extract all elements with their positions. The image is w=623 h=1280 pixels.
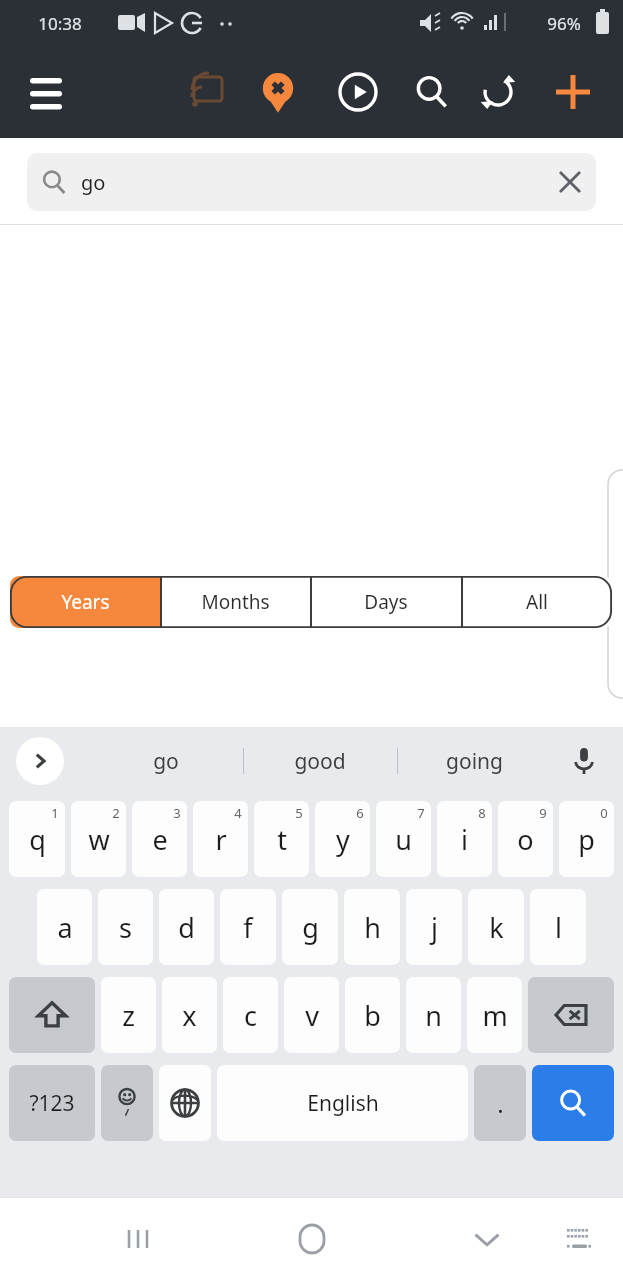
button[interactable]: y xyxy=(315,801,370,877)
button[interactable]: Refresh xyxy=(468,62,528,122)
staticText: good xyxy=(294,747,346,776)
button[interactable]: Keyboard settings xyxy=(551,1211,607,1267)
staticText: go xyxy=(81,169,106,196)
button[interactable]: good xyxy=(243,727,397,795)
staticText: f xyxy=(243,909,253,946)
button[interactable]: going xyxy=(397,727,551,795)
staticText: y xyxy=(336,821,350,858)
button[interactable]: p xyxy=(559,801,614,877)
button[interactable]: Cast xyxy=(176,61,238,123)
staticText: 6 xyxy=(356,804,364,822)
staticText: x xyxy=(182,997,197,1034)
staticText: n xyxy=(425,997,442,1034)
staticText: d xyxy=(178,909,195,946)
staticText: ?123 xyxy=(29,1089,75,1118)
staticText: go xyxy=(153,747,179,776)
staticText: Years xyxy=(61,589,110,615)
staticText: j xyxy=(431,909,438,946)
button[interactable]: All xyxy=(461,576,612,628)
staticText: Days xyxy=(364,589,408,615)
button[interactable]: Months xyxy=(160,576,310,628)
button[interactable]: z xyxy=(101,977,156,1053)
button[interactable]: w xyxy=(71,801,126,877)
button[interactable]: . xyxy=(474,1065,526,1141)
staticText: g xyxy=(302,909,319,946)
staticText: u xyxy=(395,821,412,858)
button[interactable]: s xyxy=(98,889,153,965)
staticText: b xyxy=(364,997,381,1034)
button[interactable]: Play xyxy=(328,62,388,122)
button[interactable]: More suggestions xyxy=(16,737,64,785)
button[interactable]: b xyxy=(345,977,400,1053)
button[interactable]: Menu xyxy=(14,60,78,124)
staticText: English xyxy=(307,1089,379,1118)
staticText: t xyxy=(277,821,287,858)
button[interactable]: Backspace xyxy=(528,977,614,1053)
staticText: 2 xyxy=(112,804,120,822)
staticText: w xyxy=(88,821,110,858)
button[interactable]: Clear location xyxy=(248,62,308,122)
button[interactable]: g xyxy=(282,889,338,965)
staticText: . xyxy=(497,1087,504,1120)
staticText: 10:38 xyxy=(38,12,82,35)
button[interactable]: h xyxy=(344,889,400,965)
staticText: 96% xyxy=(547,12,581,35)
button[interactable]: e xyxy=(132,801,187,877)
staticText: 4 xyxy=(234,804,242,822)
button[interactable]: Years xyxy=(10,576,160,628)
staticText: v xyxy=(305,997,319,1034)
button[interactable]: Hide keyboard xyxy=(457,1209,517,1269)
staticText: a xyxy=(57,909,73,946)
staticText: 1 xyxy=(51,804,59,822)
staticText: k xyxy=(489,909,504,946)
button[interactable]: f xyxy=(220,889,276,965)
button[interactable]: Recents xyxy=(108,1209,168,1269)
button[interactable]: l xyxy=(530,889,586,965)
staticText: c xyxy=(244,997,257,1034)
button[interactable]: v xyxy=(284,977,339,1053)
button[interactable]: o xyxy=(498,801,553,877)
button[interactable]: u xyxy=(376,801,431,877)
staticText: going xyxy=(446,747,503,776)
button[interactable]: q xyxy=(9,801,65,877)
button[interactable]: x xyxy=(162,977,217,1053)
button[interactable]: Add xyxy=(541,60,605,124)
staticText: All xyxy=(526,589,548,615)
staticText: h xyxy=(364,909,381,946)
button[interactable]: Clear xyxy=(544,156,596,208)
staticText: 9 xyxy=(539,804,547,822)
button[interactable]: Shift xyxy=(9,977,95,1053)
staticText: p xyxy=(578,821,595,858)
staticText: i xyxy=(461,821,468,858)
button[interactable]: r xyxy=(193,801,248,877)
staticText: z xyxy=(122,997,135,1034)
staticText: 7 xyxy=(417,804,425,822)
button[interactable]: k xyxy=(468,889,524,965)
staticText: 5 xyxy=(295,804,303,822)
staticText: 8 xyxy=(478,804,486,822)
button[interactable]: Days xyxy=(310,576,461,628)
staticText: q xyxy=(29,821,46,858)
button[interactable]: n xyxy=(406,977,461,1053)
staticText: 0 xyxy=(600,804,608,822)
button[interactable]: English xyxy=(217,1065,468,1141)
staticText: r xyxy=(215,821,227,858)
button[interactable]: j xyxy=(406,889,462,965)
button[interactable]: Emoji xyxy=(101,1065,153,1141)
button[interactable]: ?123 xyxy=(9,1065,95,1141)
button[interactable]: Change language xyxy=(159,1065,211,1141)
button[interactable]: go xyxy=(27,153,596,211)
staticText: 3 xyxy=(173,804,181,822)
button[interactable]: go xyxy=(88,727,243,795)
button[interactable]: Voice input xyxy=(559,736,609,786)
button[interactable]: Search xyxy=(402,62,462,122)
button[interactable]: d xyxy=(159,889,214,965)
button[interactable]: m xyxy=(467,977,522,1053)
button[interactable]: i xyxy=(437,801,492,877)
button[interactable]: c xyxy=(223,977,278,1053)
button[interactable]: t xyxy=(254,801,309,877)
button[interactable]: Search xyxy=(532,1065,614,1141)
button[interactable]: a xyxy=(37,889,92,965)
staticText: e xyxy=(152,821,168,858)
button[interactable]: Home xyxy=(282,1209,342,1269)
